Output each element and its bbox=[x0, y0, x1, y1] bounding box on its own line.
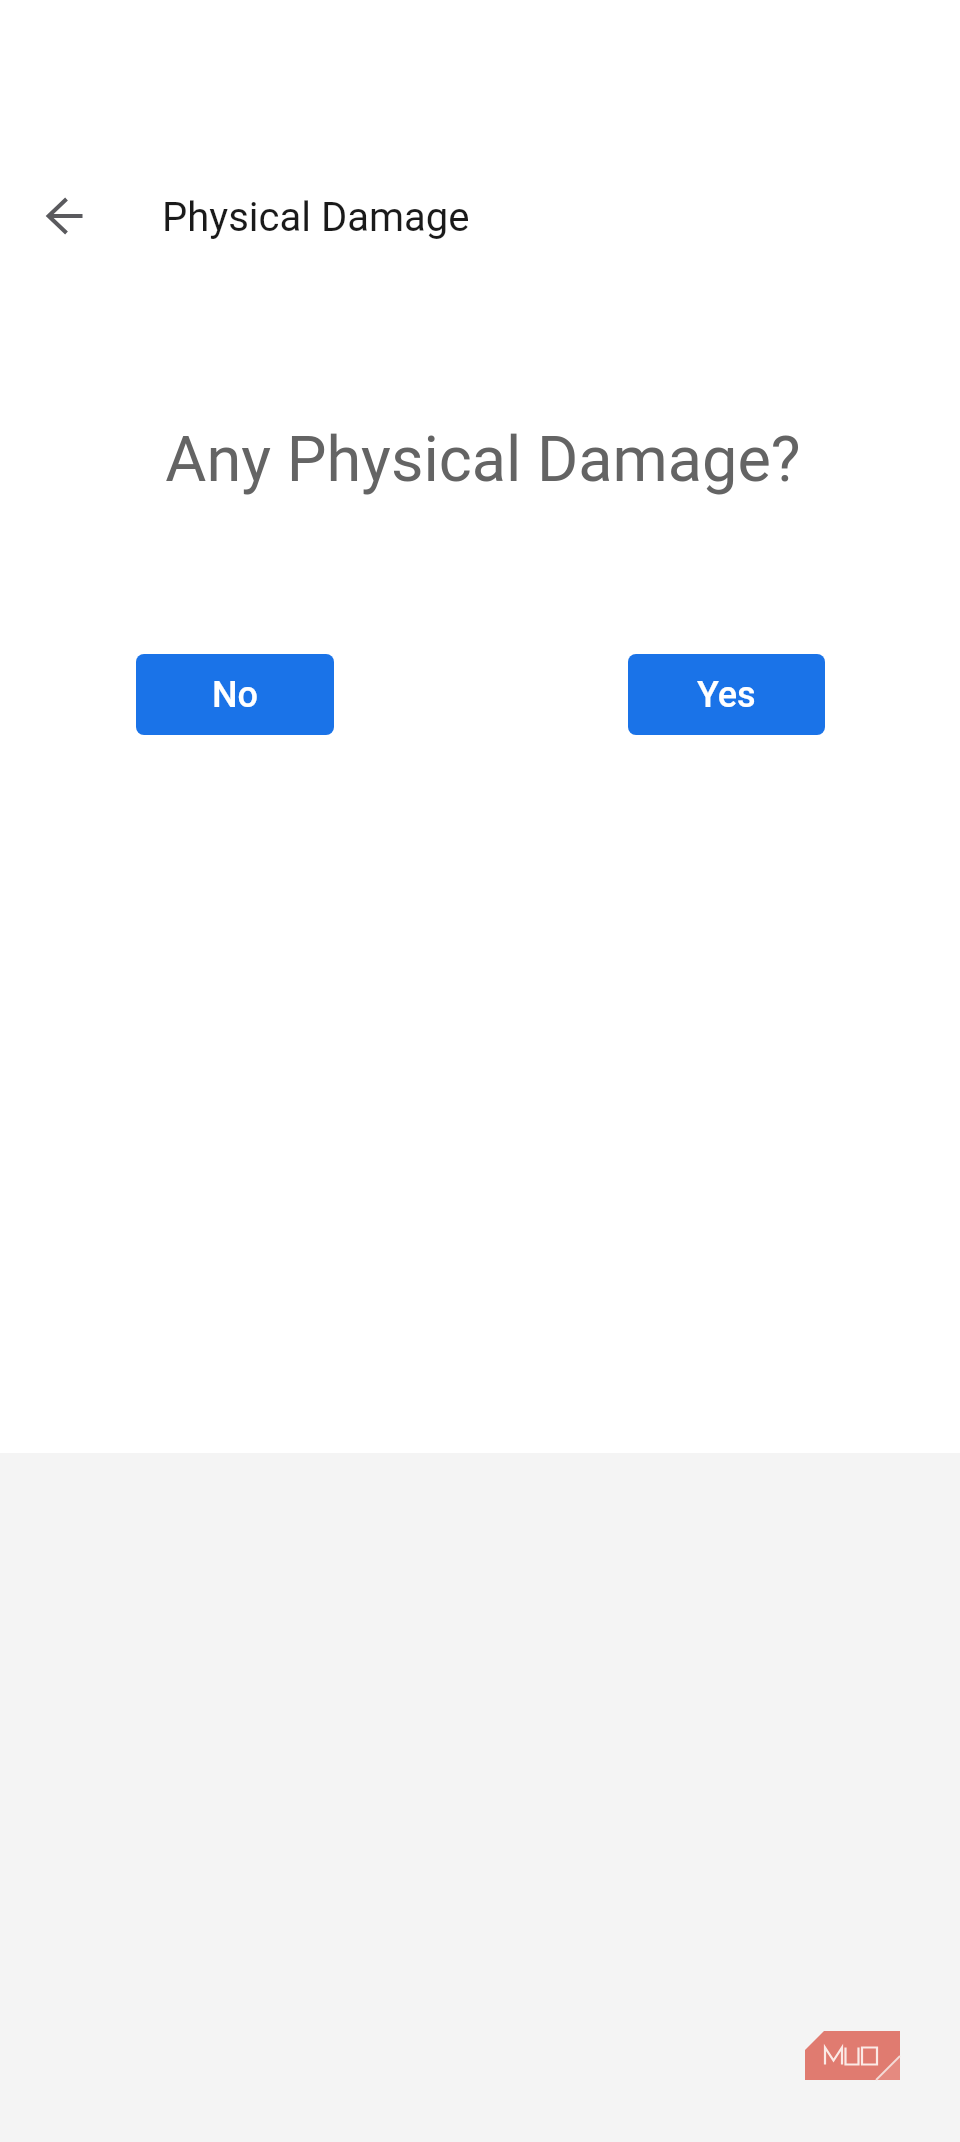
staticText: Yes bbox=[697, 674, 756, 716]
staticText: No bbox=[212, 674, 259, 716]
button[interactable]: Yes bbox=[628, 654, 825, 735]
button[interactable]: Back bbox=[23, 174, 107, 258]
staticText: Any Physical Damage? bbox=[3, 423, 960, 497]
staticText: Physical Damage bbox=[162, 194, 470, 241]
button[interactable]: No bbox=[136, 654, 334, 735]
